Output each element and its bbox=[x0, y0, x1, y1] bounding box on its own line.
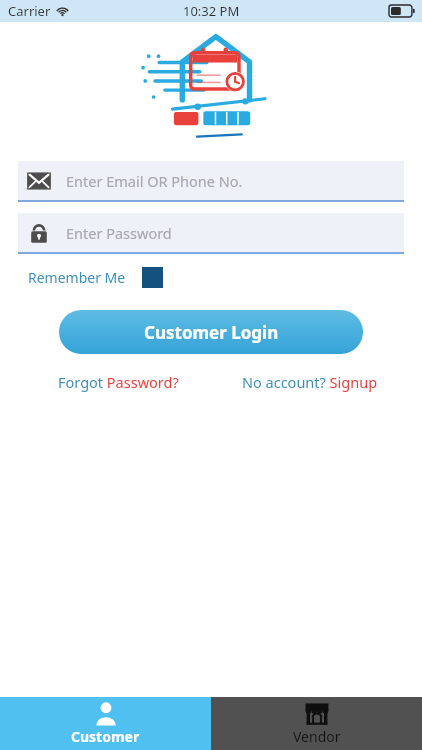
staticText: Enter Email OR Phone No. bbox=[66, 171, 243, 191]
staticText: Enter Password bbox=[66, 223, 172, 243]
staticText: Remember Me bbox=[28, 268, 126, 287]
button[interactable]: Enter Email OR Phone No. bbox=[18, 161, 404, 202]
staticText: Forgot Password? bbox=[58, 372, 179, 392]
button[interactable]: Forgot Password? bbox=[58, 372, 179, 392]
staticText: Vendor bbox=[293, 727, 341, 746]
button[interactable]: Enter Password bbox=[18, 213, 404, 254]
staticText: Customer bbox=[71, 727, 140, 746]
staticText: Customer Login bbox=[144, 321, 279, 344]
button[interactable]: Customer Login bbox=[59, 310, 363, 354]
button[interactable]: Customer bbox=[0, 697, 211, 750]
button[interactable]: Vendor bbox=[211, 697, 422, 750]
staticText: 10:32 PM bbox=[183, 2, 240, 20]
button[interactable]: Remember Me bbox=[28, 267, 422, 288]
staticText: No account? Signup bbox=[242, 372, 378, 392]
button[interactable]: No account? Signup bbox=[242, 372, 378, 392]
staticText: Carrier bbox=[8, 2, 51, 20]
